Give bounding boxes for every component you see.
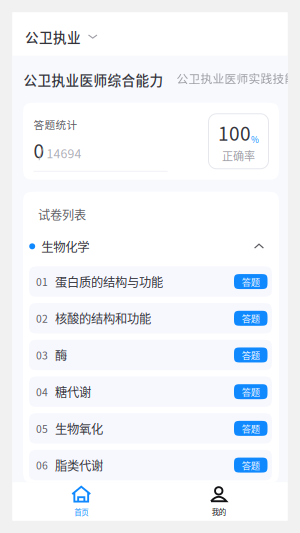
staticText: 答题 [242, 385, 260, 398]
button[interactable]: 首页 [12, 482, 150, 520]
staticText: 生物氧化 [55, 419, 103, 437]
staticText: 脂类代谢 [55, 456, 103, 474]
staticText: 试卷列表 [38, 206, 86, 223]
button[interactable]: 04 [29, 376, 272, 407]
staticText: 酶 [55, 346, 67, 364]
button[interactable]: 02 [29, 303, 272, 333]
staticText: 蛋白质的结构与功能 [55, 273, 163, 290]
staticText: 答题 [242, 458, 260, 472]
staticText: 公卫执业医师实践技能 [176, 70, 296, 87]
staticText: / 14694 [38, 144, 81, 162]
button[interactable]: 05 [29, 413, 272, 444]
staticText: 核酸的结构和功能 [55, 309, 151, 327]
staticText: 02 [36, 311, 48, 326]
staticText: 05 [36, 421, 48, 436]
staticText: 答题 [242, 275, 260, 288]
button[interactable]: 01 [29, 266, 272, 297]
button[interactable]: 公卫执业医师综合能力 [23, 70, 163, 89]
staticText: 糖代谢 [55, 383, 91, 401]
staticText: 生物化学 [41, 237, 89, 255]
staticText: 06 [36, 457, 48, 473]
staticText: 01 [36, 274, 48, 289]
staticText: 答题 [242, 348, 260, 362]
button[interactable]: 公卫执业医师实践技能 [176, 70, 296, 87]
staticText: % [251, 133, 259, 145]
staticText: 答题 [242, 422, 260, 435]
staticText: 03 [36, 347, 48, 362]
staticText: 公卫执业 [25, 27, 81, 47]
staticText: 100 [218, 119, 251, 146]
button[interactable]: 我的 [150, 482, 287, 520]
staticText: 正确率 [222, 147, 255, 163]
button[interactable]: 公卫执业 [12, 12, 105, 56]
staticText: 答题统计 [33, 117, 77, 132]
staticText: 04 [36, 384, 48, 399]
staticText: 我的 [212, 506, 226, 517]
button[interactable]: 03 [29, 340, 272, 370]
staticText: 0 [33, 136, 44, 164]
staticText: 公卫执业医师综合能力 [23, 70, 163, 89]
staticText: 答题 [242, 311, 260, 325]
staticText: 首页 [74, 507, 88, 517]
button[interactable]: 生物化学 [23, 234, 279, 258]
button[interactable]: 06 [29, 450, 272, 480]
